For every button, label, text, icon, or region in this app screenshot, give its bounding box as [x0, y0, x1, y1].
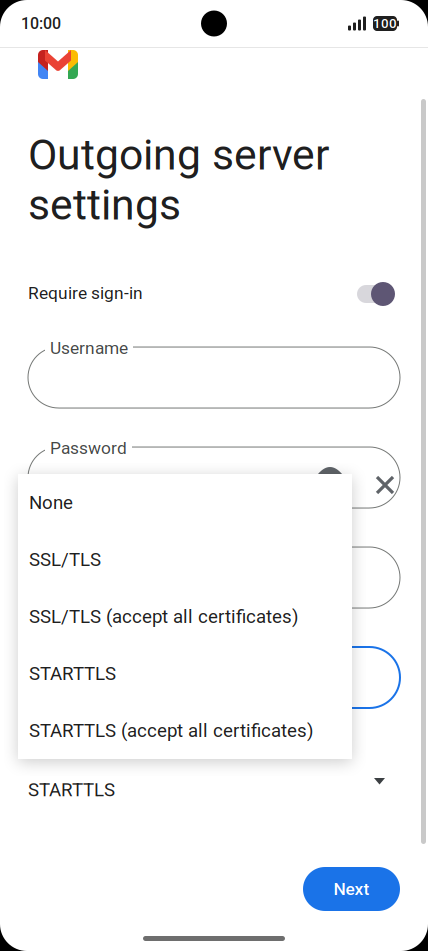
button[interactable]: STARTTLS: [18, 645, 352, 702]
staticText: SSL/TLS: [29, 549, 101, 570]
button[interactable]: SSL/TLS (accept all certificates): [18, 588, 352, 645]
button[interactable]: None: [18, 474, 352, 531]
button[interactable]: Close: [369, 469, 401, 501]
staticText: STARTTLS: [28, 779, 115, 801]
staticText: Outgoing server settings: [28, 130, 329, 230]
button[interactable]: STARTTLS (accept all certificates): [18, 702, 352, 759]
staticText: SSL/TLS (accept all certificates): [29, 606, 298, 627]
button[interactable]: SSL/TLS: [18, 531, 352, 588]
staticText: Require sign-in: [28, 283, 143, 303]
staticText: Password: [50, 438, 127, 458]
button[interactable]: Require sign-in: [355, 279, 401, 309]
staticText: Username: [50, 338, 128, 358]
staticText: 10:00: [21, 14, 61, 33]
staticText: 100: [373, 16, 397, 31]
staticText: STARTTLS: [29, 663, 116, 684]
staticText: STARTTLS (accept all certificates): [29, 720, 313, 741]
button[interactable]: Next: [303, 867, 400, 911]
staticText: Server: [50, 538, 98, 558]
staticText: Next: [333, 879, 369, 899]
staticText: None: [29, 492, 73, 513]
